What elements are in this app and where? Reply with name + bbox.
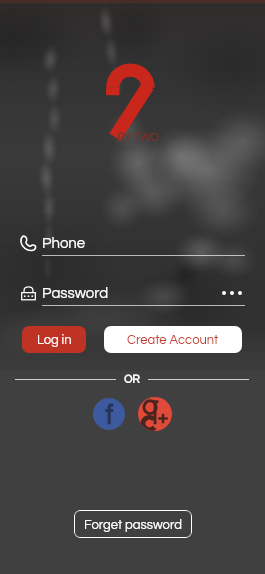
button[interactable]: Log in [22, 326, 86, 353]
staticText: Create Account [127, 333, 219, 346]
staticText: OR [124, 374, 140, 385]
button[interactable]: Forget password [74, 510, 192, 538]
staticText: BY TWO [117, 132, 159, 143]
staticText: Phone [42, 236, 86, 251]
staticText: Password [42, 286, 109, 301]
staticText: Forget password [84, 518, 182, 531]
button[interactable]: Create Account [104, 326, 242, 353]
button[interactable]: Sign in with Facebook [93, 398, 125, 430]
staticText: Log in [37, 333, 72, 346]
button[interactable]: Sign in with Google Plus [138, 397, 172, 431]
